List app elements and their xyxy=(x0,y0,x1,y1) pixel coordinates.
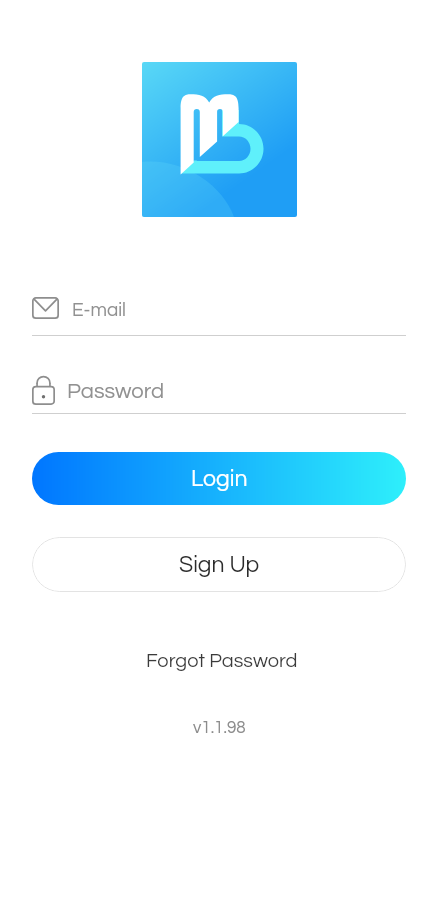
staticText: E-mail xyxy=(72,300,126,320)
staticText: Sign Up xyxy=(179,553,260,577)
staticText: Forgot Password xyxy=(146,651,298,672)
button[interactable]: Password xyxy=(32,370,406,414)
staticText: Login xyxy=(191,467,248,491)
button[interactable]: Sign Up xyxy=(32,537,406,592)
button[interactable]: Login xyxy=(32,452,406,505)
staticText: Password xyxy=(67,380,165,403)
other: Password xyxy=(32,376,55,405)
button[interactable]: Forgot Password xyxy=(142,644,302,678)
button[interactable]: E-mail xyxy=(32,290,406,336)
staticText: v1.1.98 xyxy=(193,719,246,737)
other: E-mail xyxy=(32,297,59,319)
